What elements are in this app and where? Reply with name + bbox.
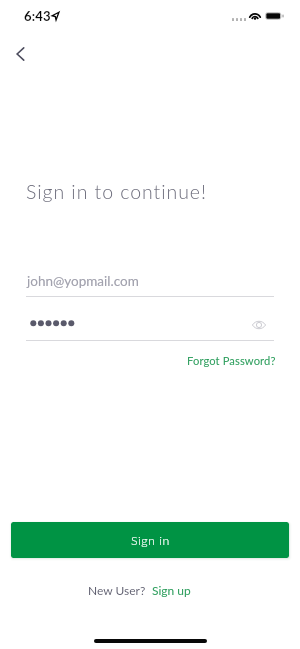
button[interactable]: Show password	[248, 314, 269, 335]
staticText: Sign up	[152, 583, 191, 597]
staticText: john@yopmail.com	[27, 273, 139, 289]
staticText: 6:43	[24, 8, 51, 24]
button[interactable]: Sign in	[11, 522, 289, 558]
staticText: Forgot Password?	[187, 354, 276, 367]
staticText: Sign in	[131, 533, 170, 548]
button[interactable]: Sign up	[152, 583, 191, 597]
staticText: Sign in to continue!	[26, 180, 207, 203]
button[interactable]: Forgot Password?	[186, 352, 277, 369]
staticText: New User?	[88, 583, 146, 597]
button[interactable]: Back	[4, 38, 36, 70]
